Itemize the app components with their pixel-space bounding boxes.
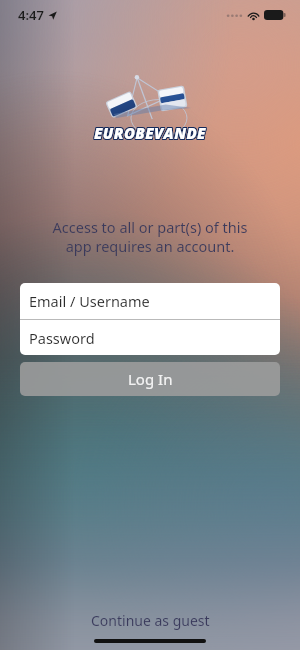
button[interactable]: Email / Username (20, 283, 280, 319)
staticText: 4:47 (18, 6, 44, 24)
staticText: EUROBEVANDE (95, 123, 207, 143)
staticText: EUROBEVANDE (93, 123, 205, 143)
staticText: Continue as guest (91, 611, 210, 630)
button[interactable]: Password (20, 320, 280, 355)
staticText: Log In (128, 369, 173, 389)
button[interactable]: Log In (20, 362, 280, 396)
staticText: EUROBEVANDE (95, 124, 207, 144)
staticText: Password (29, 328, 95, 348)
staticText: EUROBEVANDE (94, 122, 206, 142)
staticText: EUROBEVANDE (93, 124, 205, 144)
staticText: EUROBEVANDE (94, 123, 206, 143)
staticText: EUROBEVANDE (93, 122, 205, 142)
staticText: Email / Username (29, 291, 150, 311)
staticText: EUROBEVANDE (95, 122, 207, 142)
staticText: EUROBEVANDE (94, 124, 206, 144)
button[interactable]: Continue as guest (0, 606, 300, 634)
staticText: Access to all or part(s) of this app req… (18, 217, 282, 256)
